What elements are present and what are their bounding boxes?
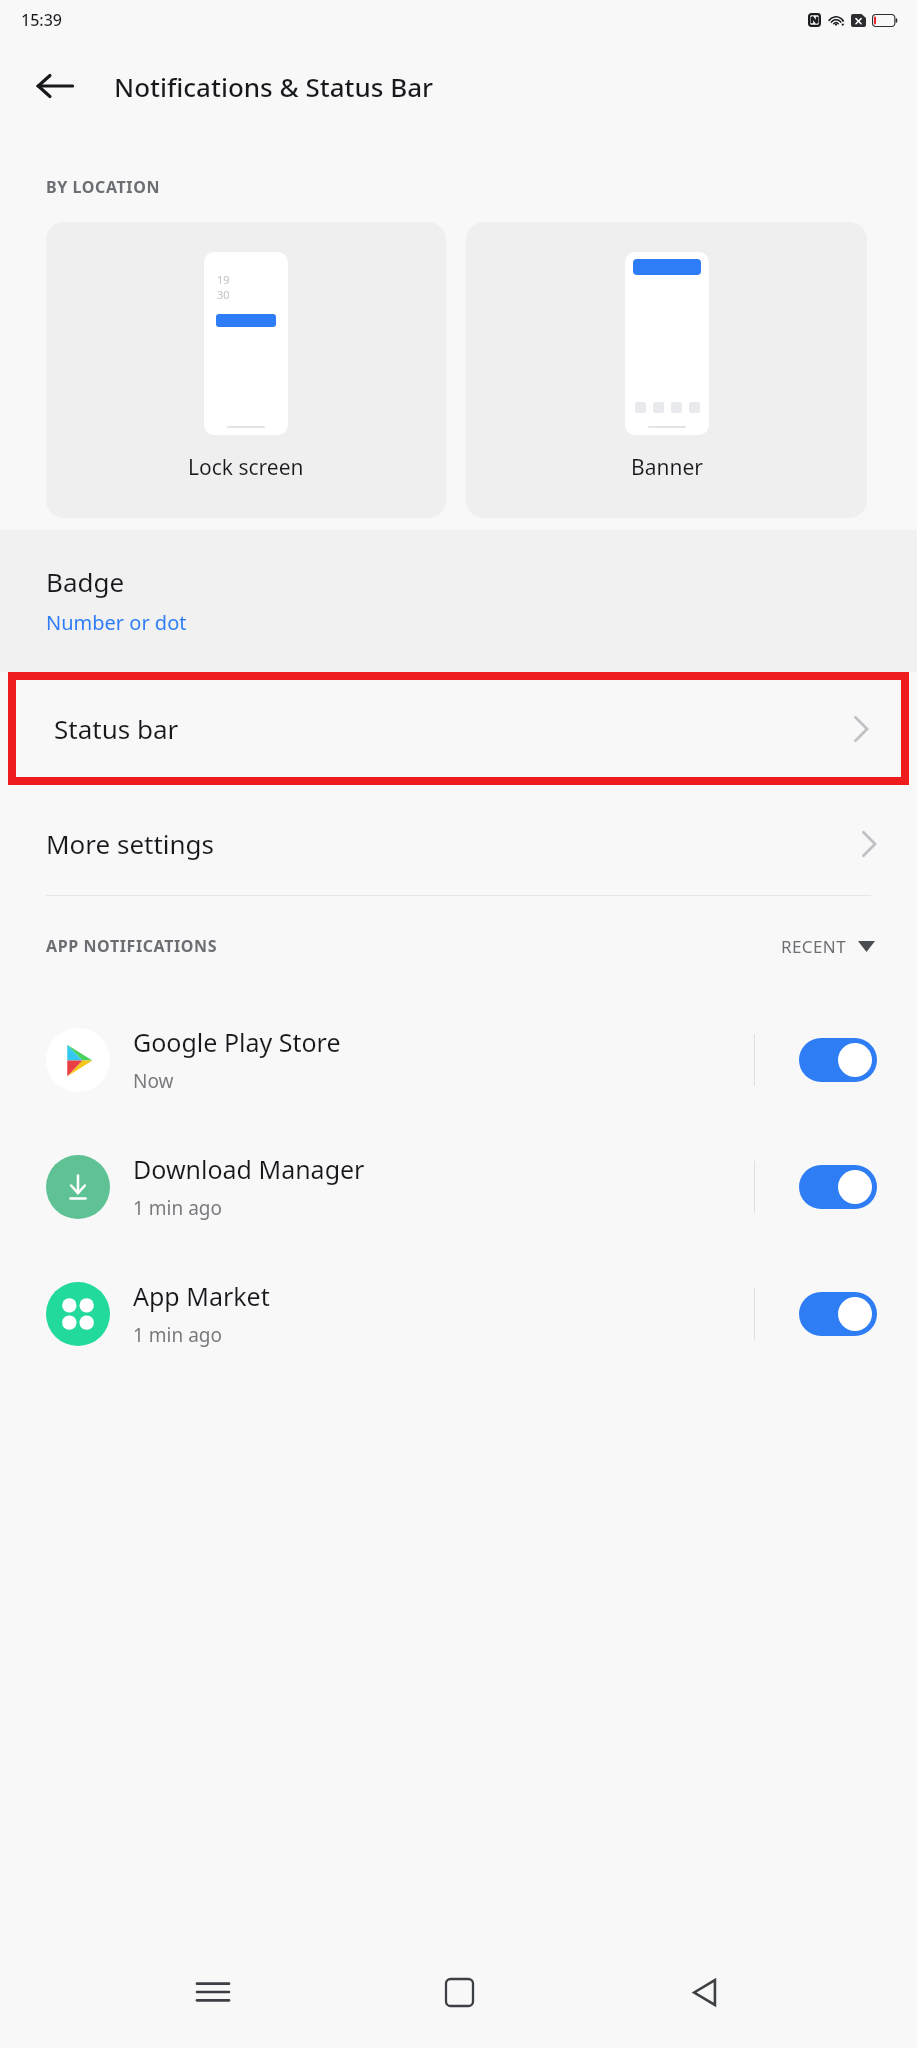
button[interactable]: Banner [466, 222, 867, 518]
button[interactable]: Back [34, 65, 76, 107]
staticText: Download Manager [133, 1152, 365, 1186]
staticText: RECENT [781, 935, 846, 958]
staticText: APP NOTIFICATIONS [46, 935, 218, 957]
button[interactable]: Toggle on [799, 1038, 877, 1082]
staticText: 1 min ago [133, 1322, 222, 1348]
staticText: Lock screen [188, 453, 304, 482]
staticText: Number or dot [46, 609, 187, 636]
staticText: Banner [631, 453, 703, 482]
button[interactable]: More settings [0, 792, 917, 895]
button[interactable]: Download Manager [0, 1123, 917, 1250]
button[interactable]: Recent apps [181, 1960, 245, 2024]
staticText: Notifications & Status Bar [114, 69, 434, 104]
staticText: 19 [217, 272, 230, 287]
button[interactable]: Toggle on [799, 1292, 877, 1336]
button[interactable]: Google Play Store [0, 996, 917, 1123]
staticText: 15:39 [21, 9, 62, 31]
staticText: 30 [217, 287, 230, 302]
staticText: Now [133, 1068, 174, 1094]
button[interactable]: RECENT [781, 935, 875, 958]
staticText: Google Play Store [133, 1025, 341, 1059]
staticText: BY LOCATION [46, 176, 161, 198]
staticText: More settings [46, 826, 215, 861]
button[interactable]: Status bar [16, 680, 901, 777]
button[interactable]: Badge [0, 530, 917, 672]
button[interactable]: Toggle on [799, 1165, 877, 1209]
staticText: Status bar [54, 711, 179, 746]
button[interactable]: App Market [0, 1250, 917, 1377]
button[interactable]: 19 [46, 222, 446, 518]
button[interactable]: Home [427, 1960, 491, 2024]
button[interactable]: Back [672, 1960, 736, 2024]
staticText: 1 min ago [133, 1195, 222, 1221]
staticText: Badge [46, 564, 125, 599]
staticText: App Market [133, 1279, 270, 1313]
